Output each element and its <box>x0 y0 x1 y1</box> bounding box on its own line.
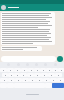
button[interactable] <box>15 78 22 82</box>
button[interactable] <box>58 68 64 72</box>
button[interactable] <box>36 78 43 82</box>
button[interactable] <box>34 73 41 77</box>
button[interactable] <box>27 73 34 77</box>
button[interactable] <box>48 73 55 77</box>
button[interactable]: Send <box>52 83 64 88</box>
button[interactable] <box>52 68 58 72</box>
button[interactable] <box>34 68 40 72</box>
button[interactable]: Send <box>57 56 63 62</box>
button[interactable] <box>46 68 52 72</box>
button[interactable] <box>8 78 15 82</box>
button[interactable] <box>14 68 21 72</box>
button[interactable] <box>0 78 8 82</box>
button[interactable] <box>28 68 34 72</box>
button[interactable] <box>55 73 62 77</box>
button[interactable] <box>1 56 56 62</box>
button[interactable] <box>14 73 20 77</box>
button[interactable] <box>20 73 27 77</box>
button[interactable] <box>8 73 14 77</box>
button[interactable] <box>22 78 29 82</box>
button[interactable] <box>57 78 64 82</box>
button[interactable] <box>21 68 28 72</box>
button[interactable] <box>7 68 14 72</box>
button[interactable] <box>29 78 36 82</box>
button[interactable] <box>0 68 7 72</box>
button[interactable] <box>41 73 48 77</box>
button[interactable] <box>2 73 8 77</box>
button[interactable] <box>43 78 50 82</box>
button[interactable] <box>40 68 46 72</box>
button[interactable] <box>50 78 57 82</box>
